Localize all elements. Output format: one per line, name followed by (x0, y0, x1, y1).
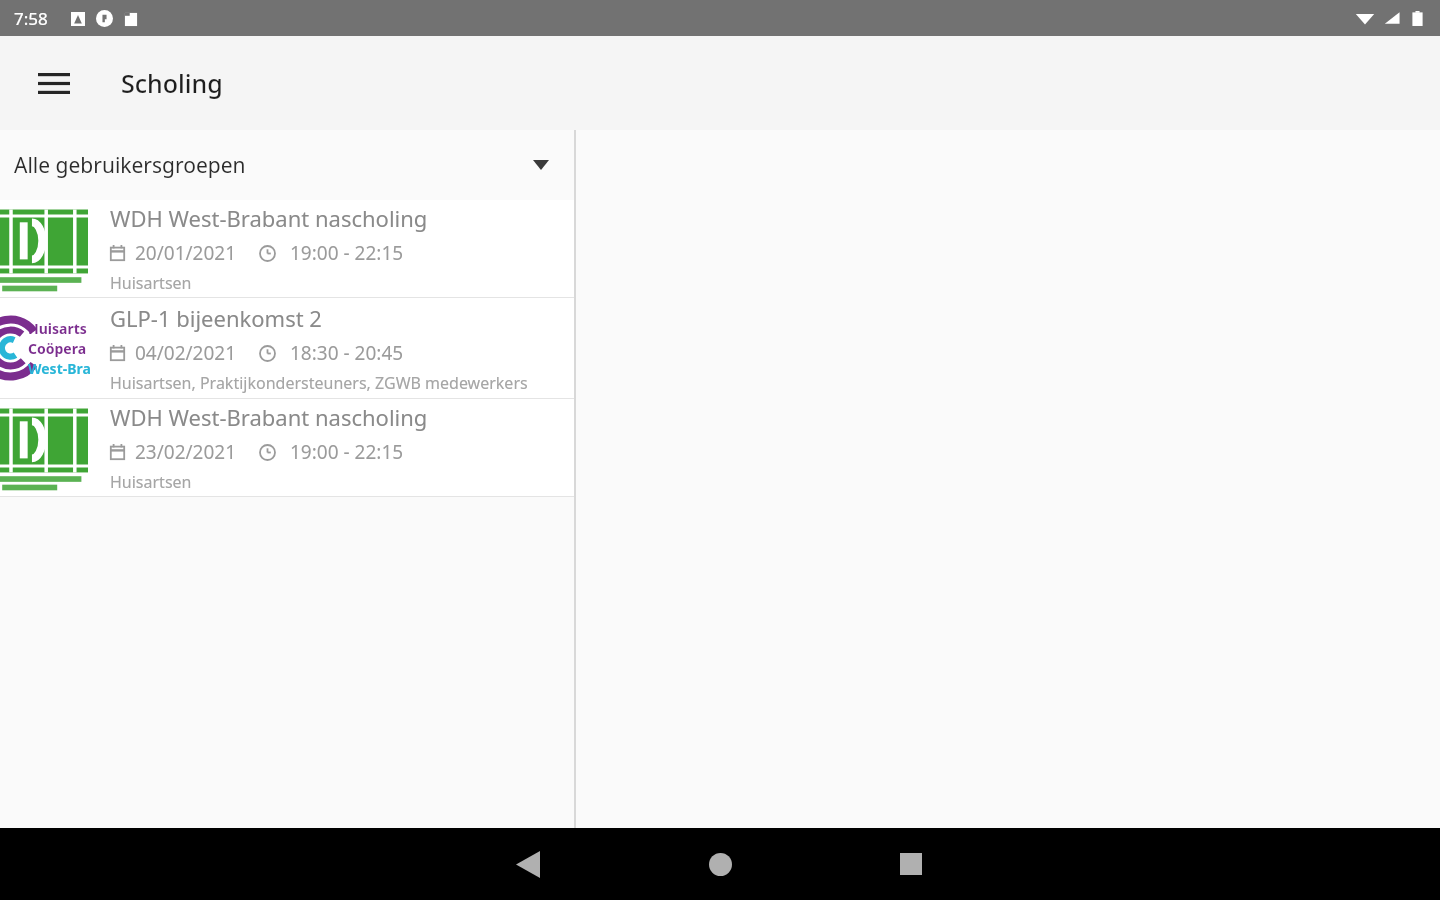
staticText: 7:58 (14, 7, 48, 30)
staticText: 19:00 - 22:15 (290, 439, 404, 465)
staticText: Alle gebruikersgroepen (14, 151, 246, 180)
button[interactable]: WDH West-Brabant nascholing (0, 399, 574, 496)
button[interactable]: Open navigation menu (22, 51, 86, 115)
staticText: Huisartsen (110, 471, 192, 493)
staticText: 19:00 - 22:15 (290, 240, 404, 266)
button[interactable]: Alle gebruikersgroepen (0, 130, 574, 200)
staticText: 23/02/2021 (135, 439, 237, 465)
button[interactable]: WDH West-Brabant nascholing (0, 200, 574, 297)
staticText: Huisarts (28, 319, 87, 338)
staticText: WDH West-Brabant nascholing (110, 203, 428, 233)
button[interactable]: Back (492, 828, 564, 900)
staticText: West-Bra (28, 359, 91, 378)
staticText: 20/01/2021 (135, 240, 237, 266)
staticText: 18:30 - 20:45 (290, 340, 404, 366)
staticText: Scholing (121, 66, 223, 100)
button[interactable]: Home (684, 828, 756, 900)
staticText: GLP-1 bijeenkomst 2 (110, 303, 322, 333)
staticText: Huisartsen (110, 272, 192, 294)
button[interactable]: Recent apps (875, 828, 947, 900)
staticText: Huisartsen, Praktijkondersteuners, ZGWB … (110, 372, 528, 394)
button[interactable]: Huisarts (0, 298, 574, 398)
staticText: WDH West-Brabant nascholing (110, 402, 428, 432)
staticText: 04/02/2021 (135, 340, 237, 366)
staticText: Coöpera (28, 339, 87, 358)
